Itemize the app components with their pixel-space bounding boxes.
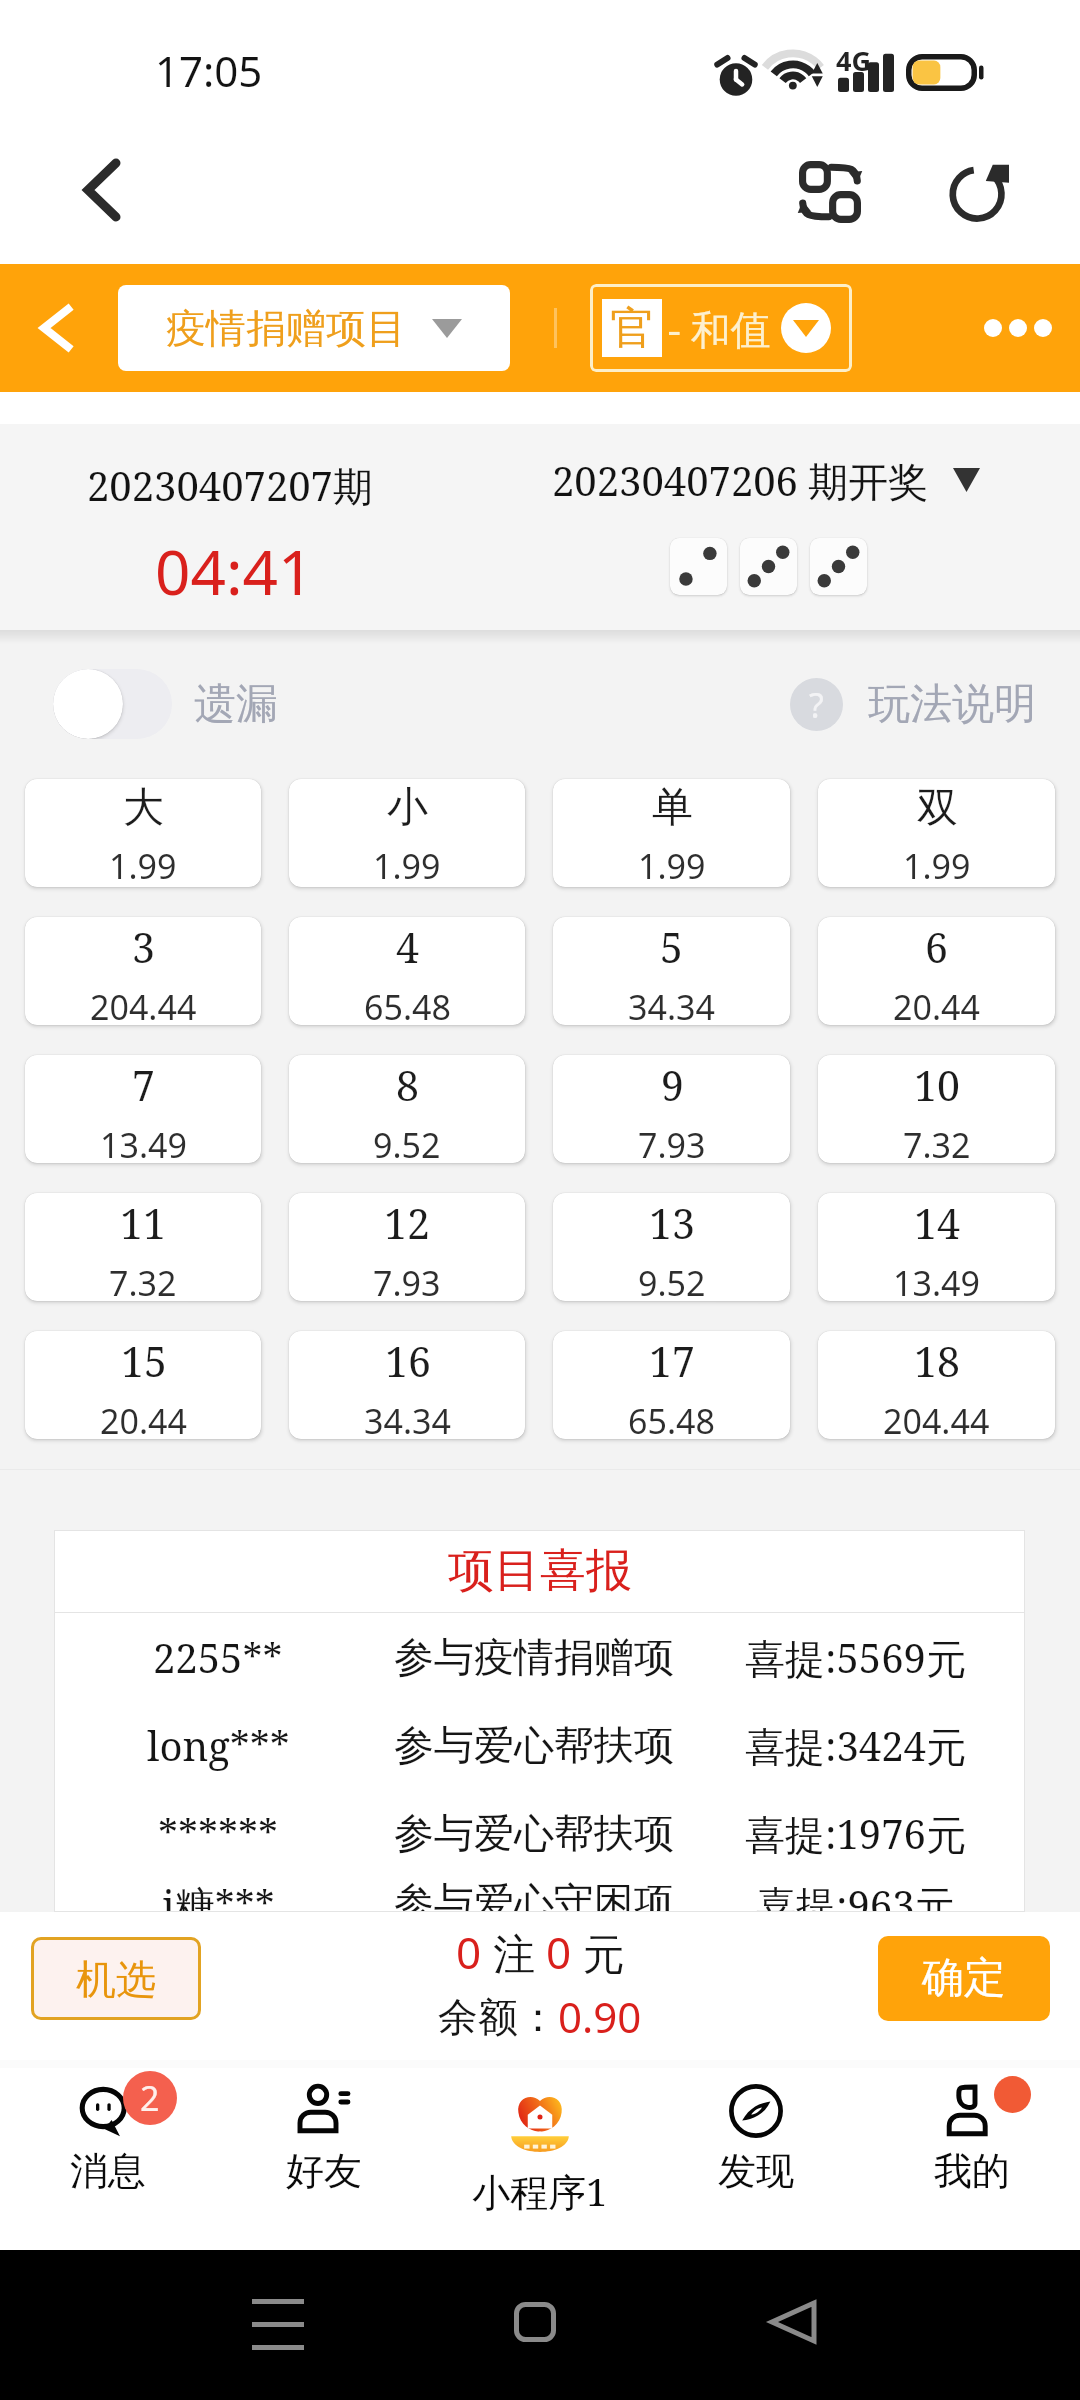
staticText: 10 (914, 1057, 960, 1113)
staticText: 元 (572, 1924, 625, 1981)
staticText: 20230407206 期开奖 (552, 453, 929, 508)
staticText: 9.52 (638, 1260, 706, 1301)
button[interactable]: 遗漏 (53, 669, 278, 739)
button[interactable]: 8 (289, 1055, 525, 1163)
staticText: 7 (132, 1057, 155, 1113)
staticText: 20230407207期 (87, 458, 373, 513)
button[interactable]: 双 (818, 779, 1055, 887)
staticText: 机选 (76, 1954, 156, 2004)
button[interactable]: Back (12, 284, 100, 372)
button[interactable]: 14 (818, 1193, 1055, 1301)
staticText: 参与爱心守困项 (394, 1877, 674, 1912)
staticText: 我的 (934, 2147, 1010, 2195)
button[interactable]: Back (50, 138, 154, 242)
staticText: 0 (546, 1922, 572, 1982)
staticText: 双 (917, 782, 958, 834)
button[interactable]: 我的 (864, 2068, 1080, 2250)
staticText: 8 (396, 1057, 419, 1113)
button[interactable]: 11 (25, 1193, 261, 1301)
button[interactable]: Back (743, 2272, 843, 2372)
staticText: 1.99 (373, 843, 441, 887)
staticText: 大 (123, 782, 164, 834)
button[interactable]: Refresh (928, 141, 1032, 245)
button[interactable]: 官 (590, 284, 852, 372)
button[interactable]: 确定 (878, 1936, 1050, 2021)
staticText: 喜提:1976元 (745, 1806, 966, 1861)
button[interactable]: 大 (25, 779, 261, 887)
button[interactable]: 9 (553, 1055, 790, 1163)
staticText: 喜提:5569元 (745, 1630, 966, 1685)
staticText: 发现 (718, 2147, 794, 2195)
button[interactable]: 发现 (648, 2068, 864, 2250)
staticText: 参与爱心帮扶项 (394, 1808, 674, 1858)
staticText: 参与疫情捐赠项 (394, 1632, 674, 1682)
button[interactable]: 小程序1 (432, 2068, 648, 2250)
button[interactable]: 单 (553, 779, 790, 887)
staticText: 13.49 (100, 1122, 187, 1163)
button[interactable]: Recents (228, 2272, 328, 2372)
staticText: 喜提:3424元 (745, 1718, 966, 1773)
staticText: 7.32 (109, 1260, 177, 1301)
button[interactable]: Home (485, 2272, 585, 2372)
staticText: 小 (387, 782, 428, 834)
button[interactable]: 13 (553, 1193, 790, 1301)
staticText: ? (809, 682, 824, 728)
staticText: 18 (914, 1333, 960, 1389)
staticText: 13 (649, 1195, 695, 1251)
staticText: 13.49 (893, 1260, 980, 1301)
staticText: 喜提:963元 (756, 1877, 955, 1912)
staticText: 好友 (286, 2147, 362, 2195)
staticText: 5 (660, 919, 683, 975)
staticText: 1.99 (109, 843, 177, 887)
button[interactable]: 7 (25, 1055, 261, 1163)
staticText: 玩法说明 (868, 678, 1036, 731)
staticText: 12 (384, 1195, 430, 1251)
staticText: 9.52 (373, 1122, 441, 1163)
staticText: 65.48 (628, 1398, 715, 1439)
staticText: 遗漏 (194, 678, 278, 731)
button[interactable]: 15 (25, 1331, 261, 1439)
button[interactable]: 20230407206 期开奖 (540, 448, 992, 512)
staticText: 1.99 (903, 843, 971, 887)
staticText: 小程序1 (472, 2165, 608, 2217)
button[interactable]: More options (960, 287, 1076, 369)
staticText: 7.93 (638, 1122, 706, 1163)
button[interactable]: 10 (818, 1055, 1055, 1163)
button[interactable]: 18 (818, 1331, 1055, 1439)
staticText: 20.44 (100, 1398, 187, 1439)
staticText: 项目喜报 (448, 1542, 632, 1600)
staticText: 2255** (153, 1630, 283, 1684)
button[interactable]: 17 (553, 1331, 790, 1439)
staticText: 单 (652, 782, 693, 834)
button[interactable]: 2 (0, 2068, 216, 2250)
staticText: 34.34 (628, 984, 715, 1025)
staticText: 0.90 (558, 1988, 642, 2045)
button[interactable]: ? (790, 678, 1036, 731)
button[interactable]: 4 (289, 917, 525, 1025)
button[interactable]: 16 (289, 1331, 525, 1439)
button[interactable]: 5 (553, 917, 790, 1025)
staticText: 4G (836, 42, 871, 79)
staticText: 注 (482, 1924, 546, 1981)
staticText: 20.44 (893, 984, 980, 1025)
button[interactable]: 机选 (31, 1937, 201, 2020)
staticText: 确定 (922, 1952, 1006, 2005)
staticText: - 和值 (668, 301, 771, 356)
staticText: 16 (385, 1333, 431, 1389)
staticText: 0 (456, 1922, 482, 1982)
staticText: 204.44 (90, 984, 197, 1025)
staticText: 9 (661, 1057, 684, 1113)
button[interactable]: 12 (289, 1193, 525, 1301)
staticText: 1.99 (638, 843, 706, 887)
button[interactable]: 6 (818, 917, 1055, 1025)
staticText: 11 (120, 1195, 166, 1251)
staticText: i糖*** (162, 1877, 275, 1912)
button[interactable]: Mini program (778, 140, 882, 244)
staticText: 04:41 (155, 529, 314, 613)
button[interactable]: 小 (289, 779, 525, 887)
button[interactable]: 3 (25, 917, 261, 1025)
button[interactable]: 好友 (216, 2068, 432, 2250)
staticText: 34.34 (364, 1398, 451, 1439)
button[interactable]: 疫情捐赠项目 (118, 285, 510, 371)
staticText: 17 (649, 1333, 695, 1389)
